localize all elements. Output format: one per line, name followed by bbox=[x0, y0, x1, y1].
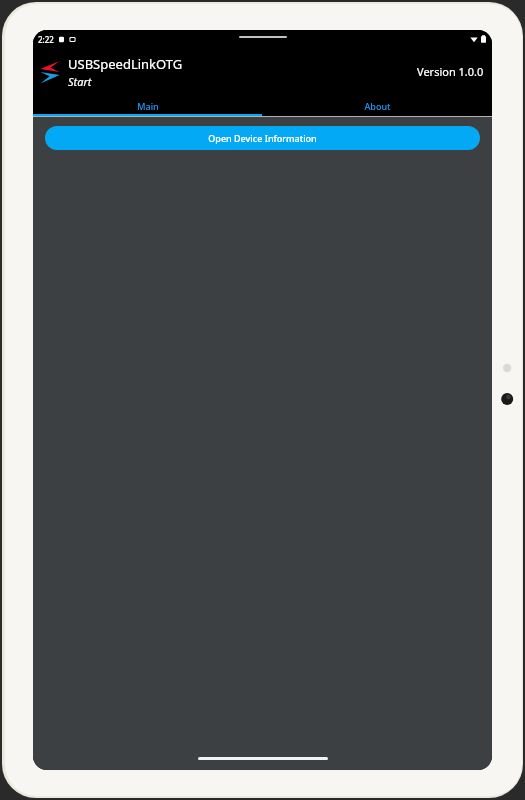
staticText: USBSpeedLinkOTG bbox=[68, 55, 183, 73]
staticText: Main bbox=[137, 100, 159, 112]
staticText: 2:22 bbox=[38, 34, 54, 45]
button[interactable]: About bbox=[262, 95, 492, 116]
staticText: Start bbox=[68, 74, 92, 89]
staticText: Open Device Information bbox=[208, 132, 317, 144]
button[interactable]: Main bbox=[33, 95, 262, 116]
staticText: Version 1.0.0 bbox=[417, 64, 484, 79]
button[interactable]: Open Device Information bbox=[45, 126, 480, 150]
staticText: About bbox=[364, 100, 391, 112]
